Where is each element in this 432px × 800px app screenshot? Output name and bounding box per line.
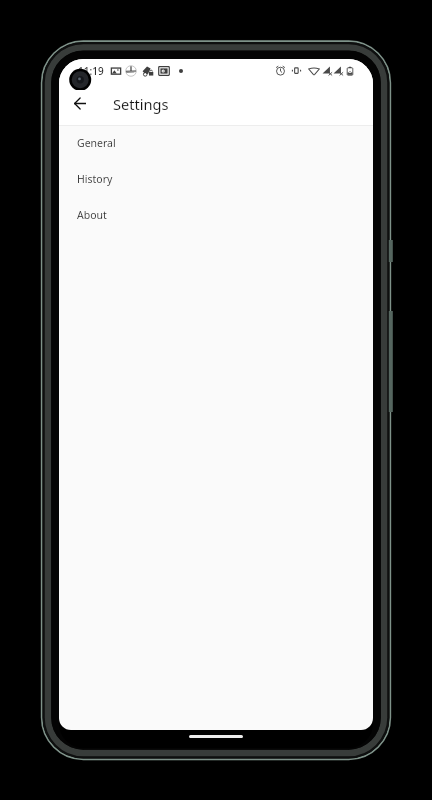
button[interactable]: History	[59, 162, 373, 198]
button[interactable]: General	[59, 126, 373, 162]
button[interactable]: About	[59, 198, 373, 234]
button[interactable]: Back	[74, 98, 86, 109]
staticText: 11:19	[78, 64, 104, 78]
staticText: General	[77, 136, 116, 150]
staticText: About	[77, 208, 107, 222]
staticText: History	[77, 172, 113, 186]
staticText: Settings	[113, 94, 169, 114]
